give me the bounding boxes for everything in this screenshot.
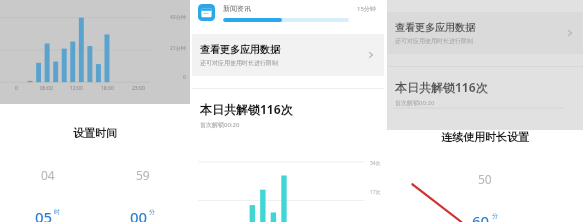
- staticText: 12:00: [70, 85, 83, 92]
- staticText: 本日共解锁116次: [200, 101, 293, 117]
- staticText: 34次: [370, 160, 381, 167]
- staticText: 时: [54, 208, 60, 216]
- button[interactable]: 查看更多应用数据: [387, 12, 583, 54]
- staticText: 21分钟: [170, 45, 186, 52]
- staticText: 本日共解锁116次: [395, 79, 488, 95]
- staticText: 分: [149, 208, 155, 216]
- staticText: 新闻资讯: [223, 4, 251, 13]
- staticText: 分: [492, 212, 498, 220]
- staticText: 首次解锁00:20: [395, 99, 435, 107]
- other: 新闻资讯: [198, 4, 215, 21]
- staticText: 43分钟: [170, 14, 186, 21]
- staticText: 06:00: [40, 85, 53, 92]
- staticText: 05: [35, 207, 53, 222]
- staticText: 首次解锁00:20: [200, 121, 240, 129]
- staticText: 15分钟: [357, 5, 376, 13]
- staticText: 50: [478, 171, 492, 187]
- staticText: 18:00: [101, 85, 114, 92]
- other: More: [565, 28, 575, 38]
- staticText: 59: [136, 167, 150, 183]
- staticText: 60: [472, 211, 490, 222]
- staticText: 还可对应用使用时长进行限制: [395, 37, 473, 45]
- staticText: 查看更多应用数据: [200, 43, 280, 56]
- staticText: 0: [183, 74, 186, 81]
- staticText: 04: [41, 167, 55, 183]
- staticText: 设置时间: [0, 126, 190, 140]
- staticText: 查看更多应用数据: [395, 21, 475, 34]
- staticText: 23:00: [132, 85, 145, 92]
- other: More: [366, 50, 376, 60]
- staticText: 0: [15, 85, 18, 92]
- staticText: 17次: [370, 189, 381, 196]
- button[interactable]: 新闻资讯: [192, 0, 384, 26]
- staticText: 连续使用时长设置: [441, 130, 529, 144]
- staticText: 还可对应用使用时长进行限制: [200, 59, 278, 67]
- button[interactable]: 查看更多应用数据: [192, 34, 384, 76]
- staticText: 00: [130, 207, 148, 222]
